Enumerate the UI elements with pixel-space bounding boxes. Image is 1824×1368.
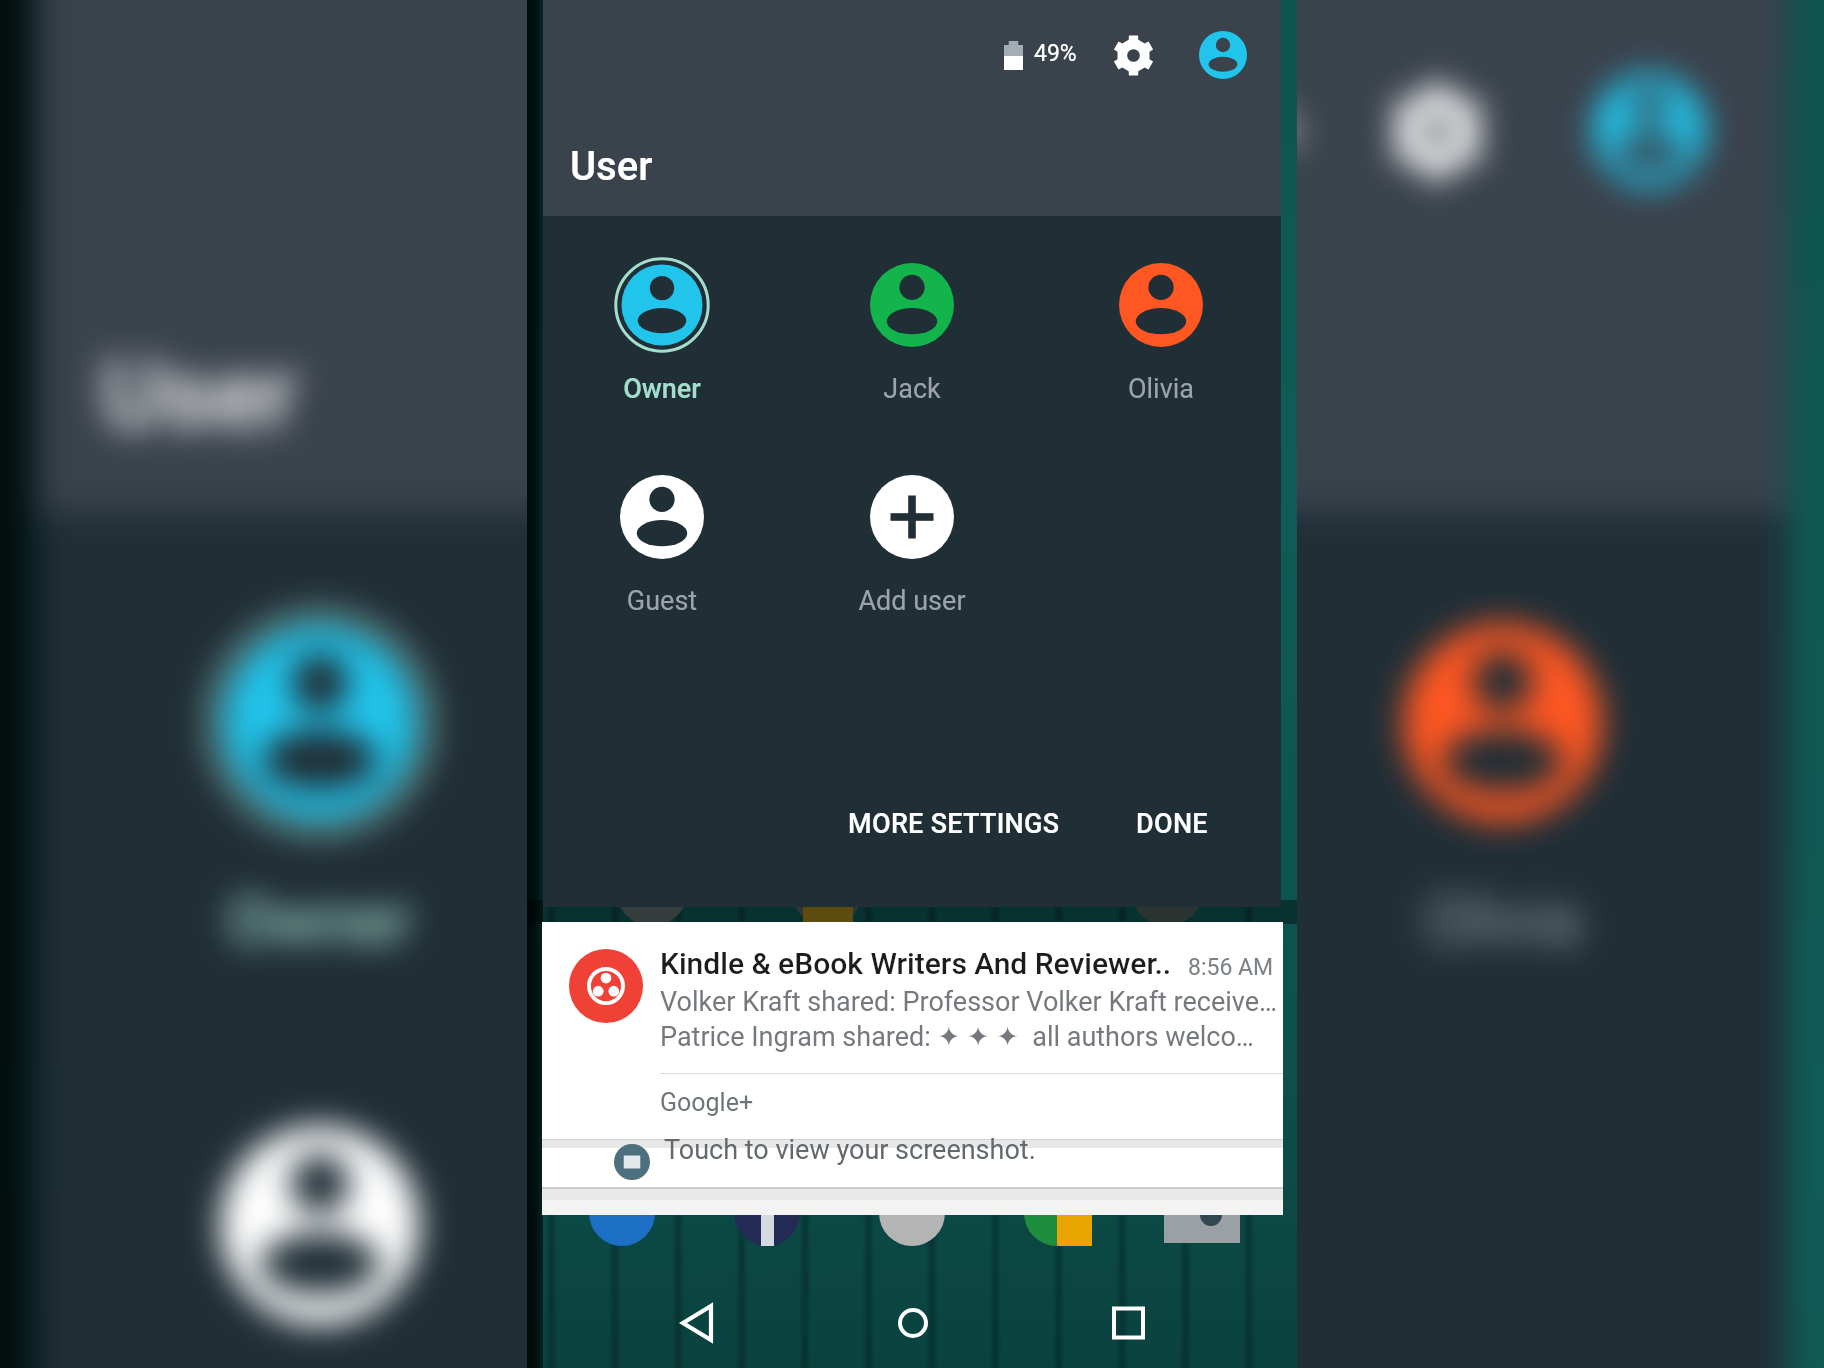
staticText: Owner: [550, 373, 774, 405]
button[interactable]: Owner: [54, 581, 585, 955]
button[interactable]: Current user: [1593, 73, 1706, 187]
button[interactable]: Recent apps: [1073, 1283, 1183, 1363]
button[interactable]: Jack: [800, 245, 1024, 403]
staticText: User: [570, 143, 653, 190]
staticText: Jack: [647, 884, 1178, 960]
button[interactable]: Current user: [1199, 31, 1247, 79]
staticText: Volker Kraft shared: Professor Volker Kr…: [660, 986, 1278, 1018]
staticText: Touch to view your screenshot.: [664, 1134, 1036, 1166]
staticText: User: [102, 339, 299, 450]
staticText: 49%: [1202, 95, 1303, 159]
button[interactable]: Jack: [647, 581, 1178, 955]
staticText: Owner: [54, 884, 585, 960]
button[interactable]: Add user: [647, 1083, 1178, 1368]
button[interactable]: Guest: [550, 457, 774, 615]
staticText: Olivia: [1049, 373, 1273, 405]
staticText: 49%: [1034, 40, 1077, 67]
staticText: Google+: [660, 1088, 754, 1117]
button[interactable]: Home: [858, 1283, 968, 1363]
staticText: Patrice Ingram shared: ✦ ✦ ✦ all authors…: [660, 1021, 1254, 1053]
staticText: Kindle & eBook Writers And Reviewer..: [660, 946, 1172, 981]
staticText: Add user: [800, 585, 1024, 617]
button[interactable]: MORE SETTINGS: [832, 792, 1076, 856]
button[interactable]: Owner: [550, 245, 774, 403]
staticText: Olivia: [1237, 884, 1768, 960]
button[interactable]: Olivia: [1049, 245, 1273, 403]
staticText: 8:56 AM: [1188, 954, 1274, 981]
button[interactable]: DONE: [1120, 792, 1224, 856]
button[interactable]: Settings: [1109, 31, 1157, 79]
button[interactable]: Guest: [54, 1083, 585, 1368]
staticText: MORE SETTINGS: [848, 808, 1060, 840]
button[interactable]: Settings: [1379, 73, 1493, 187]
button[interactable]: Kindle & eBook Writers And Reviewer..: [542, 922, 1283, 1215]
staticText: Guest: [550, 585, 774, 617]
button[interactable]: Olivia: [1237, 581, 1768, 955]
staticText: DONE: [1136, 808, 1208, 840]
button[interactable]: Add user: [800, 457, 1024, 615]
staticText: Jack: [800, 373, 1024, 405]
button[interactable]: Back: [642, 1283, 752, 1363]
